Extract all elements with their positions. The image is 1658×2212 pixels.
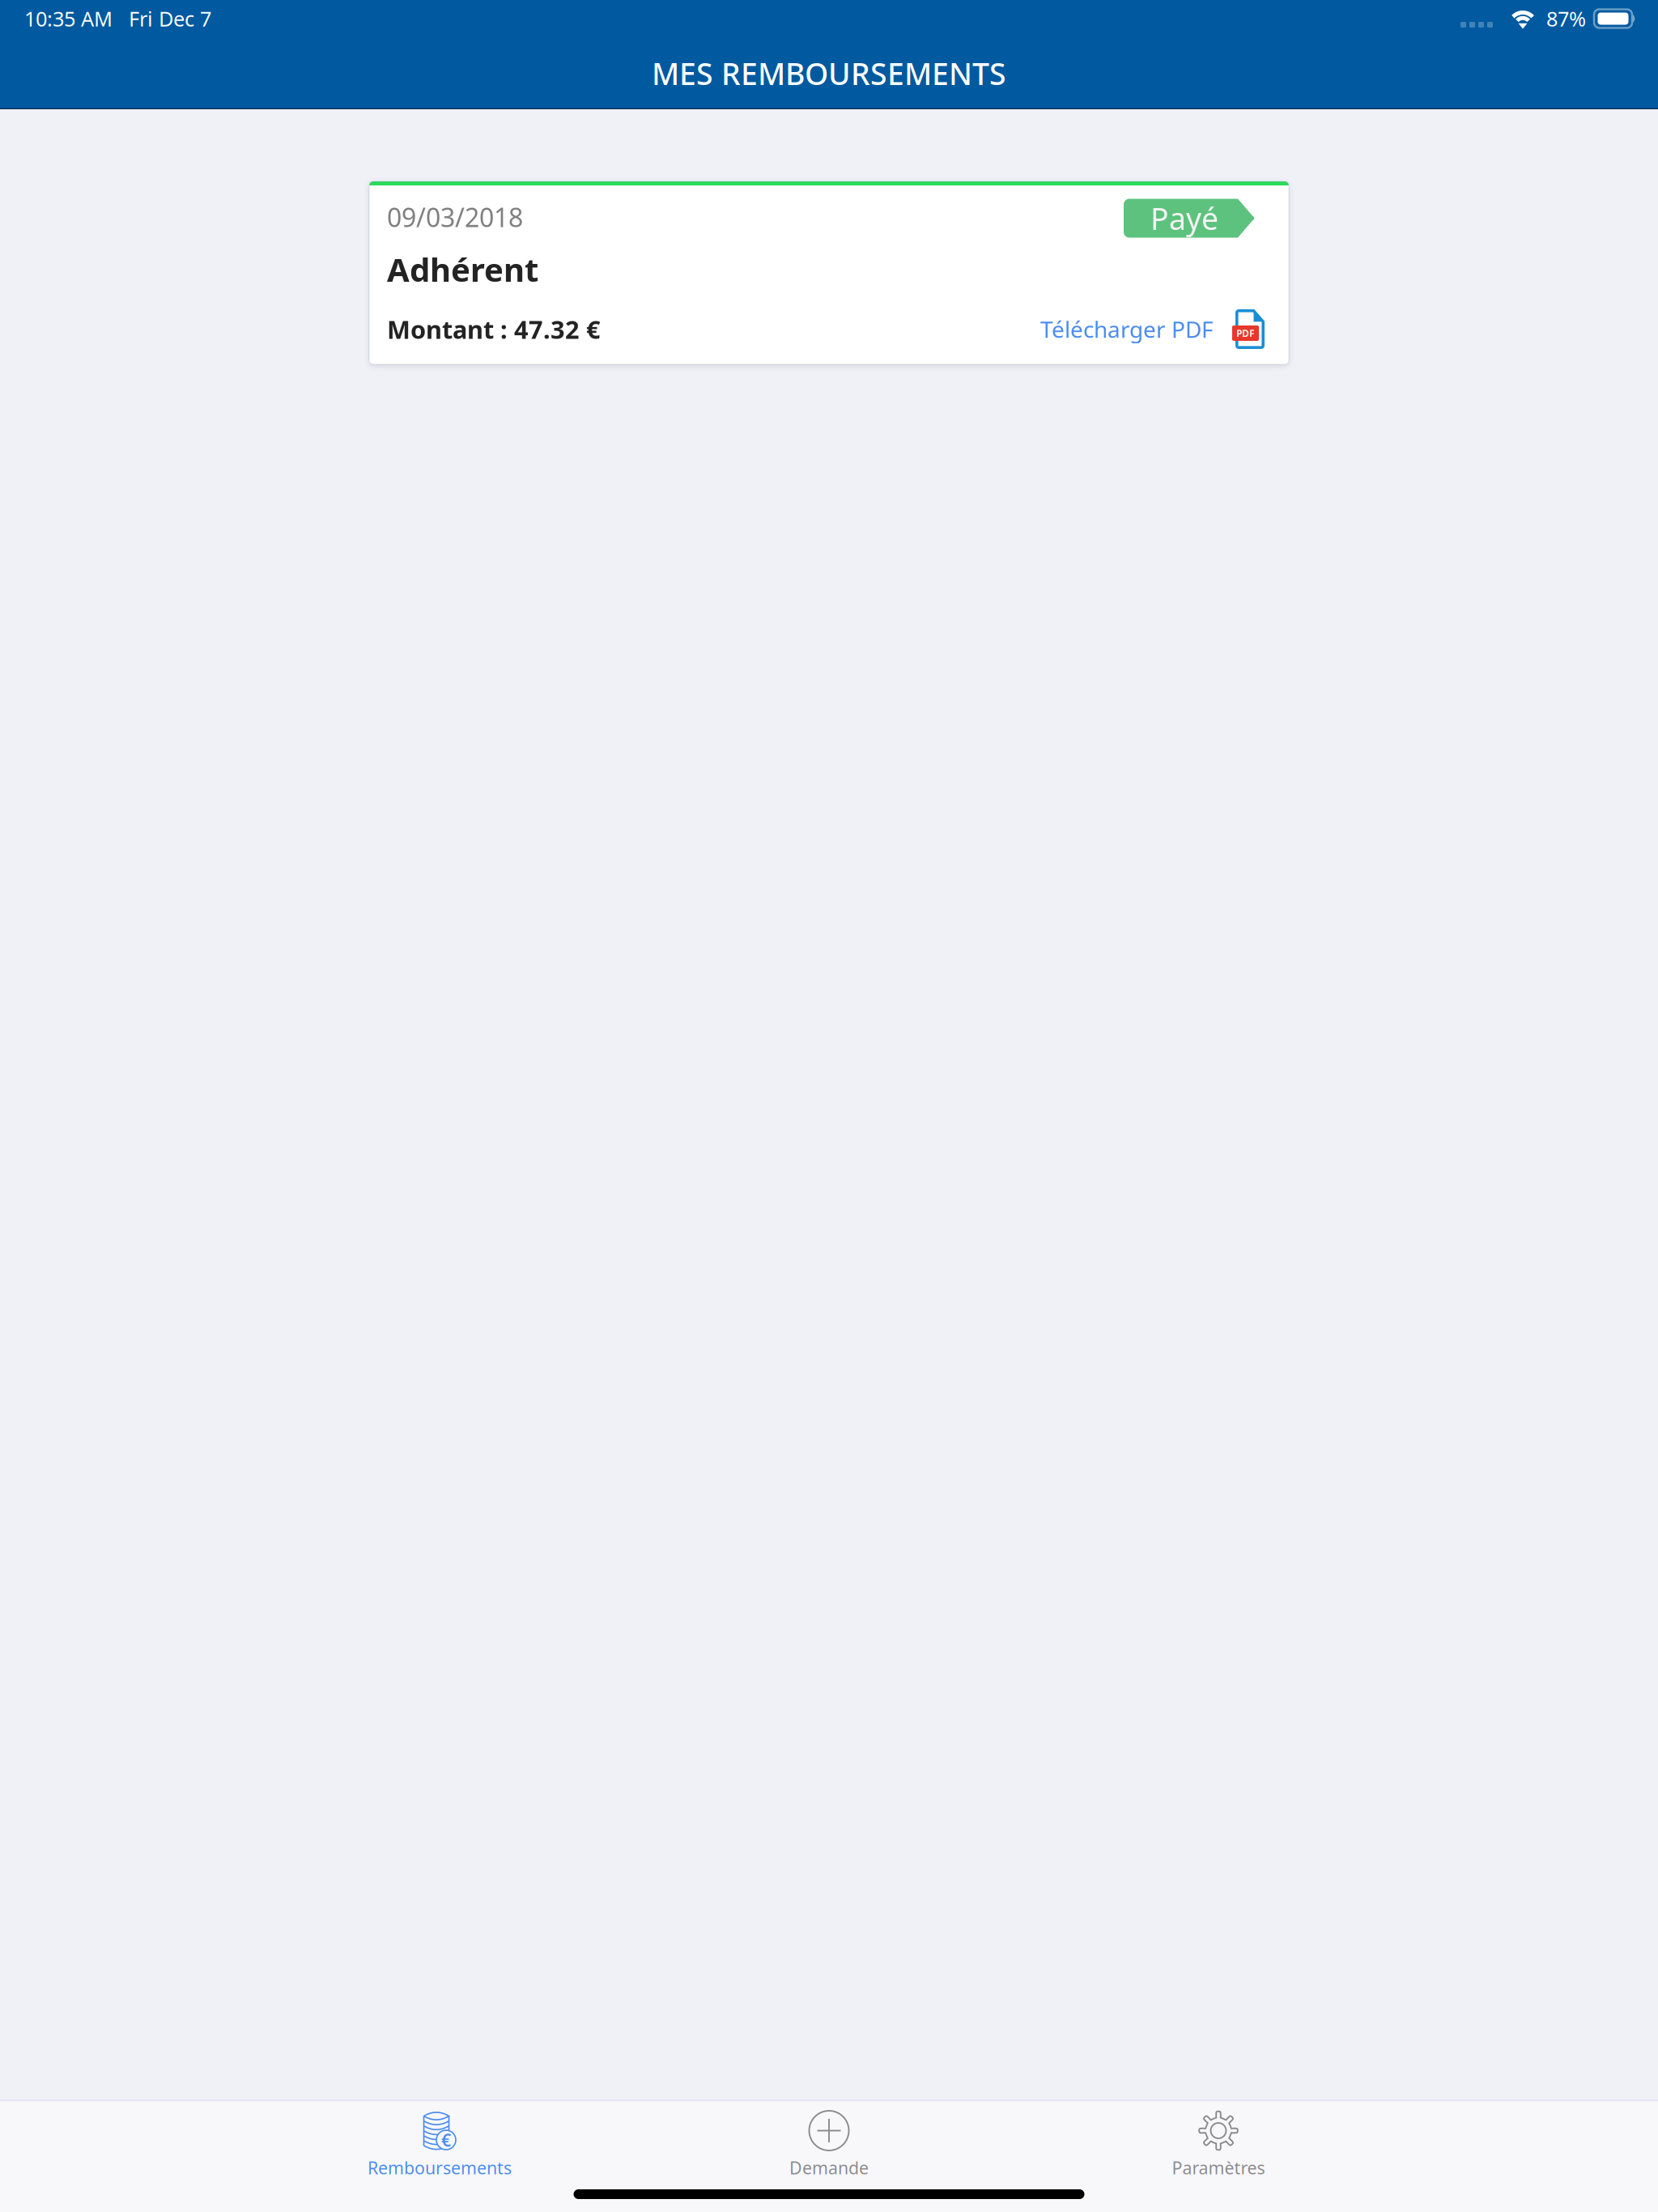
staticText: MES REMBOURSEMENTS: [652, 53, 1006, 93]
button[interactable]: Demande: [699, 2099, 959, 2212]
button[interactable]: Télécharger PDF: [1040, 309, 1268, 349]
staticText: Montant : 47.32 €: [387, 313, 601, 346]
staticText: 09/03/2018: [387, 200, 523, 234]
staticText: Télécharger PDF: [1040, 314, 1214, 344]
staticText: €: [441, 2128, 451, 2151]
staticText: Paramètres: [1172, 2156, 1265, 2179]
staticText: Demande: [789, 2156, 869, 2179]
staticText: Payé: [1150, 198, 1218, 238]
button[interactable]: €: [310, 2099, 569, 2212]
staticText: 87%: [1546, 5, 1586, 32]
staticText: Fri Dec 7: [129, 5, 211, 32]
staticText: Adhérent: [387, 248, 538, 291]
button[interactable]: Paramètres: [1089, 2099, 1348, 2212]
staticText: 10:35 AM: [24, 5, 113, 32]
staticText: Remboursements: [368, 2156, 512, 2179]
staticText: PDF: [1236, 327, 1255, 340]
button[interactable]: 09/03/2018: [369, 181, 1289, 364]
